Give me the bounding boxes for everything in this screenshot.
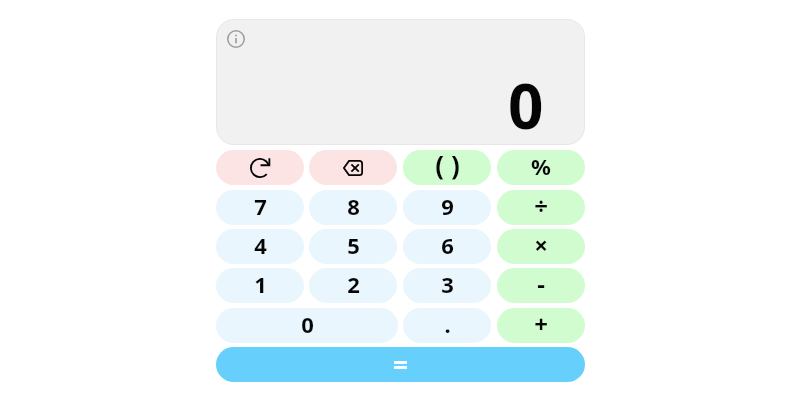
button[interactable]: 0 — [216, 308, 398, 343]
button[interactable]: 3 — [403, 268, 491, 303]
button[interactable]: Percent — [497, 150, 585, 185]
button[interactable]: 9 — [403, 190, 491, 225]
button[interactable]: ÷ — [497, 190, 585, 225]
staticText: + — [534, 308, 548, 340]
button[interactable]: Parentheses — [403, 150, 491, 185]
button[interactable]: 4 — [216, 229, 304, 264]
button[interactable]: 5 — [309, 229, 397, 264]
button[interactable]: Clear — [216, 150, 304, 185]
staticText: 5 — [347, 230, 360, 260]
staticText: 8 — [347, 191, 360, 221]
button[interactable]: - — [497, 268, 585, 303]
button[interactable]: × — [497, 229, 585, 264]
staticText: - — [537, 268, 545, 300]
staticText: 1 — [254, 269, 267, 299]
staticText: 3 — [441, 269, 454, 299]
staticText: % — [531, 151, 551, 181]
staticText: 7 — [254, 191, 267, 221]
staticText: 2 — [347, 269, 360, 299]
button[interactable]: 2 — [309, 268, 397, 303]
button[interactable]: Decimal point — [403, 308, 491, 343]
staticText: 0 — [508, 63, 544, 145]
button[interactable]: 1 — [216, 268, 304, 303]
button[interactable]: Backspace — [309, 150, 397, 185]
staticText: 9 — [441, 191, 454, 221]
staticText: ÷ — [534, 190, 548, 222]
button[interactable]: 8 — [309, 190, 397, 225]
button[interactable]: Plus — [497, 308, 585, 343]
button[interactable]: Equals — [216, 347, 585, 382]
button[interactable]: Info — [227, 30, 245, 48]
button[interactable]: 6 — [403, 229, 491, 264]
staticText: 0 — [301, 309, 314, 339]
staticText: . — [444, 309, 451, 339]
staticText: = — [393, 347, 408, 382]
staticText: 4 — [254, 230, 267, 260]
staticText: ( ) — [435, 150, 460, 182]
button[interactable]: 7 — [216, 190, 304, 225]
staticText: 6 — [441, 230, 454, 260]
staticText: × — [534, 229, 548, 261]
